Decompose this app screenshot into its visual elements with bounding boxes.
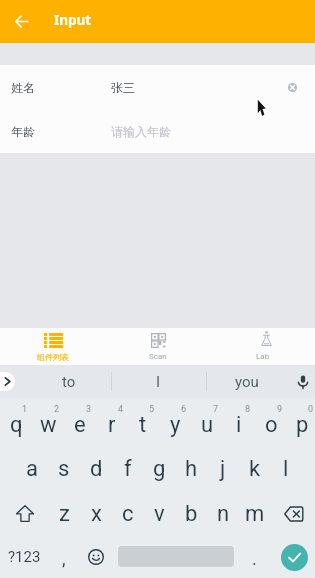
staticText: t [139, 412, 147, 438]
button[interactable]: e [64, 398, 96, 445]
button[interactable]: y [159, 398, 191, 445]
staticText: . [252, 548, 257, 569]
button[interactable]: you [225, 369, 269, 395]
button[interactable]: o [255, 398, 287, 445]
button[interactable]: k [239, 445, 271, 492]
staticText: w [40, 412, 57, 438]
staticText: Scan [149, 352, 167, 361]
button[interactable]: s [48, 445, 80, 492]
button[interactable]: ?123 [2, 542, 46, 572]
staticText: 9 [277, 404, 283, 415]
button[interactable]: n [207, 492, 239, 535]
staticText: q [10, 412, 23, 438]
button[interactable]: m [239, 492, 271, 535]
staticText: n [217, 501, 230, 527]
staticText: f [124, 456, 132, 482]
button[interactable]: Lab [210, 328, 315, 365]
button[interactable]: 组件列表 [0, 328, 105, 365]
button[interactable]: l [270, 445, 302, 492]
button[interactable]: 年龄 [0, 109, 315, 153]
staticText: d [90, 456, 103, 482]
button[interactable]: t [127, 398, 159, 445]
staticText: 6 [181, 404, 187, 415]
button[interactable]: z [48, 492, 80, 535]
staticText: 3 [86, 404, 92, 415]
staticText: to [62, 373, 76, 391]
button[interactable]: Back [7, 7, 35, 35]
button[interactable]: r [96, 398, 128, 445]
staticText: , [62, 548, 66, 569]
staticText: u [201, 412, 214, 438]
button[interactable]: a [16, 445, 48, 492]
staticText: p [296, 412, 309, 438]
staticText: b [185, 501, 198, 527]
button[interactable]: j [207, 445, 239, 492]
staticText: 8 [245, 404, 251, 415]
button[interactable]: x [80, 492, 112, 535]
button[interactable]: Clear text [283, 78, 301, 96]
button[interactable]: 姓名 [0, 65, 315, 109]
staticText: c [122, 501, 134, 527]
staticText: j [220, 456, 226, 482]
staticText: g [153, 456, 166, 482]
button[interactable]: p [286, 398, 315, 445]
staticText: 请输入年龄 [111, 124, 171, 139]
staticText: 0 [308, 404, 314, 415]
staticText: l [283, 456, 289, 482]
button[interactable]: f [112, 445, 144, 492]
staticText: 7 [213, 404, 219, 415]
staticText: 年龄 [11, 124, 35, 139]
button[interactable]: Backspace [268, 492, 315, 535]
button[interactable]: Shift [0, 492, 47, 535]
staticText: ?123 [8, 548, 41, 566]
button[interactable]: , [49, 542, 79, 572]
staticText: z [59, 501, 70, 527]
staticText: 姓名 [11, 80, 35, 95]
staticText: a [26, 456, 38, 482]
staticText: 2 [54, 404, 60, 415]
button[interactable]: Emoji [81, 542, 111, 572]
staticText: y [170, 412, 181, 438]
button[interactable]: Voice input [294, 373, 312, 391]
button[interactable]: g [143, 445, 175, 492]
button[interactable]: c [112, 492, 144, 535]
staticText: i [236, 412, 242, 438]
staticText: Input [54, 11, 92, 29]
staticText: Lab [256, 352, 270, 361]
button[interactable]: d [80, 445, 112, 492]
staticText: 4 [118, 404, 124, 415]
button[interactable]: i [223, 398, 255, 445]
staticText: k [249, 456, 261, 482]
staticText: you [235, 373, 259, 391]
button[interactable]: v [143, 492, 175, 535]
staticText: e [74, 412, 86, 438]
button[interactable]: Scan [105, 328, 210, 365]
staticText: r [108, 412, 116, 438]
staticText: 5 [149, 404, 155, 415]
button[interactable]: . [239, 542, 269, 572]
button[interactable]: I [136, 369, 180, 395]
staticText: o [265, 412, 278, 438]
button[interactable]: Done [281, 544, 308, 571]
staticText: x [91, 501, 102, 527]
staticText: m [245, 501, 265, 527]
staticText: 组件列表 [37, 352, 69, 362]
staticText: h [185, 456, 198, 482]
button[interactable]: to [47, 369, 91, 395]
button[interactable]: h [175, 445, 207, 492]
staticText: 张三 [111, 80, 135, 95]
button[interactable]: u [191, 398, 223, 445]
staticText: v [154, 501, 165, 527]
staticText: I [156, 373, 161, 391]
button[interactable]: w [32, 398, 64, 445]
staticText: s [58, 456, 70, 482]
button[interactable]: q [0, 398, 32, 445]
button[interactable]: More suggestions [0, 372, 15, 391]
staticText: 1 [22, 404, 28, 415]
button[interactable]: b [175, 492, 207, 535]
